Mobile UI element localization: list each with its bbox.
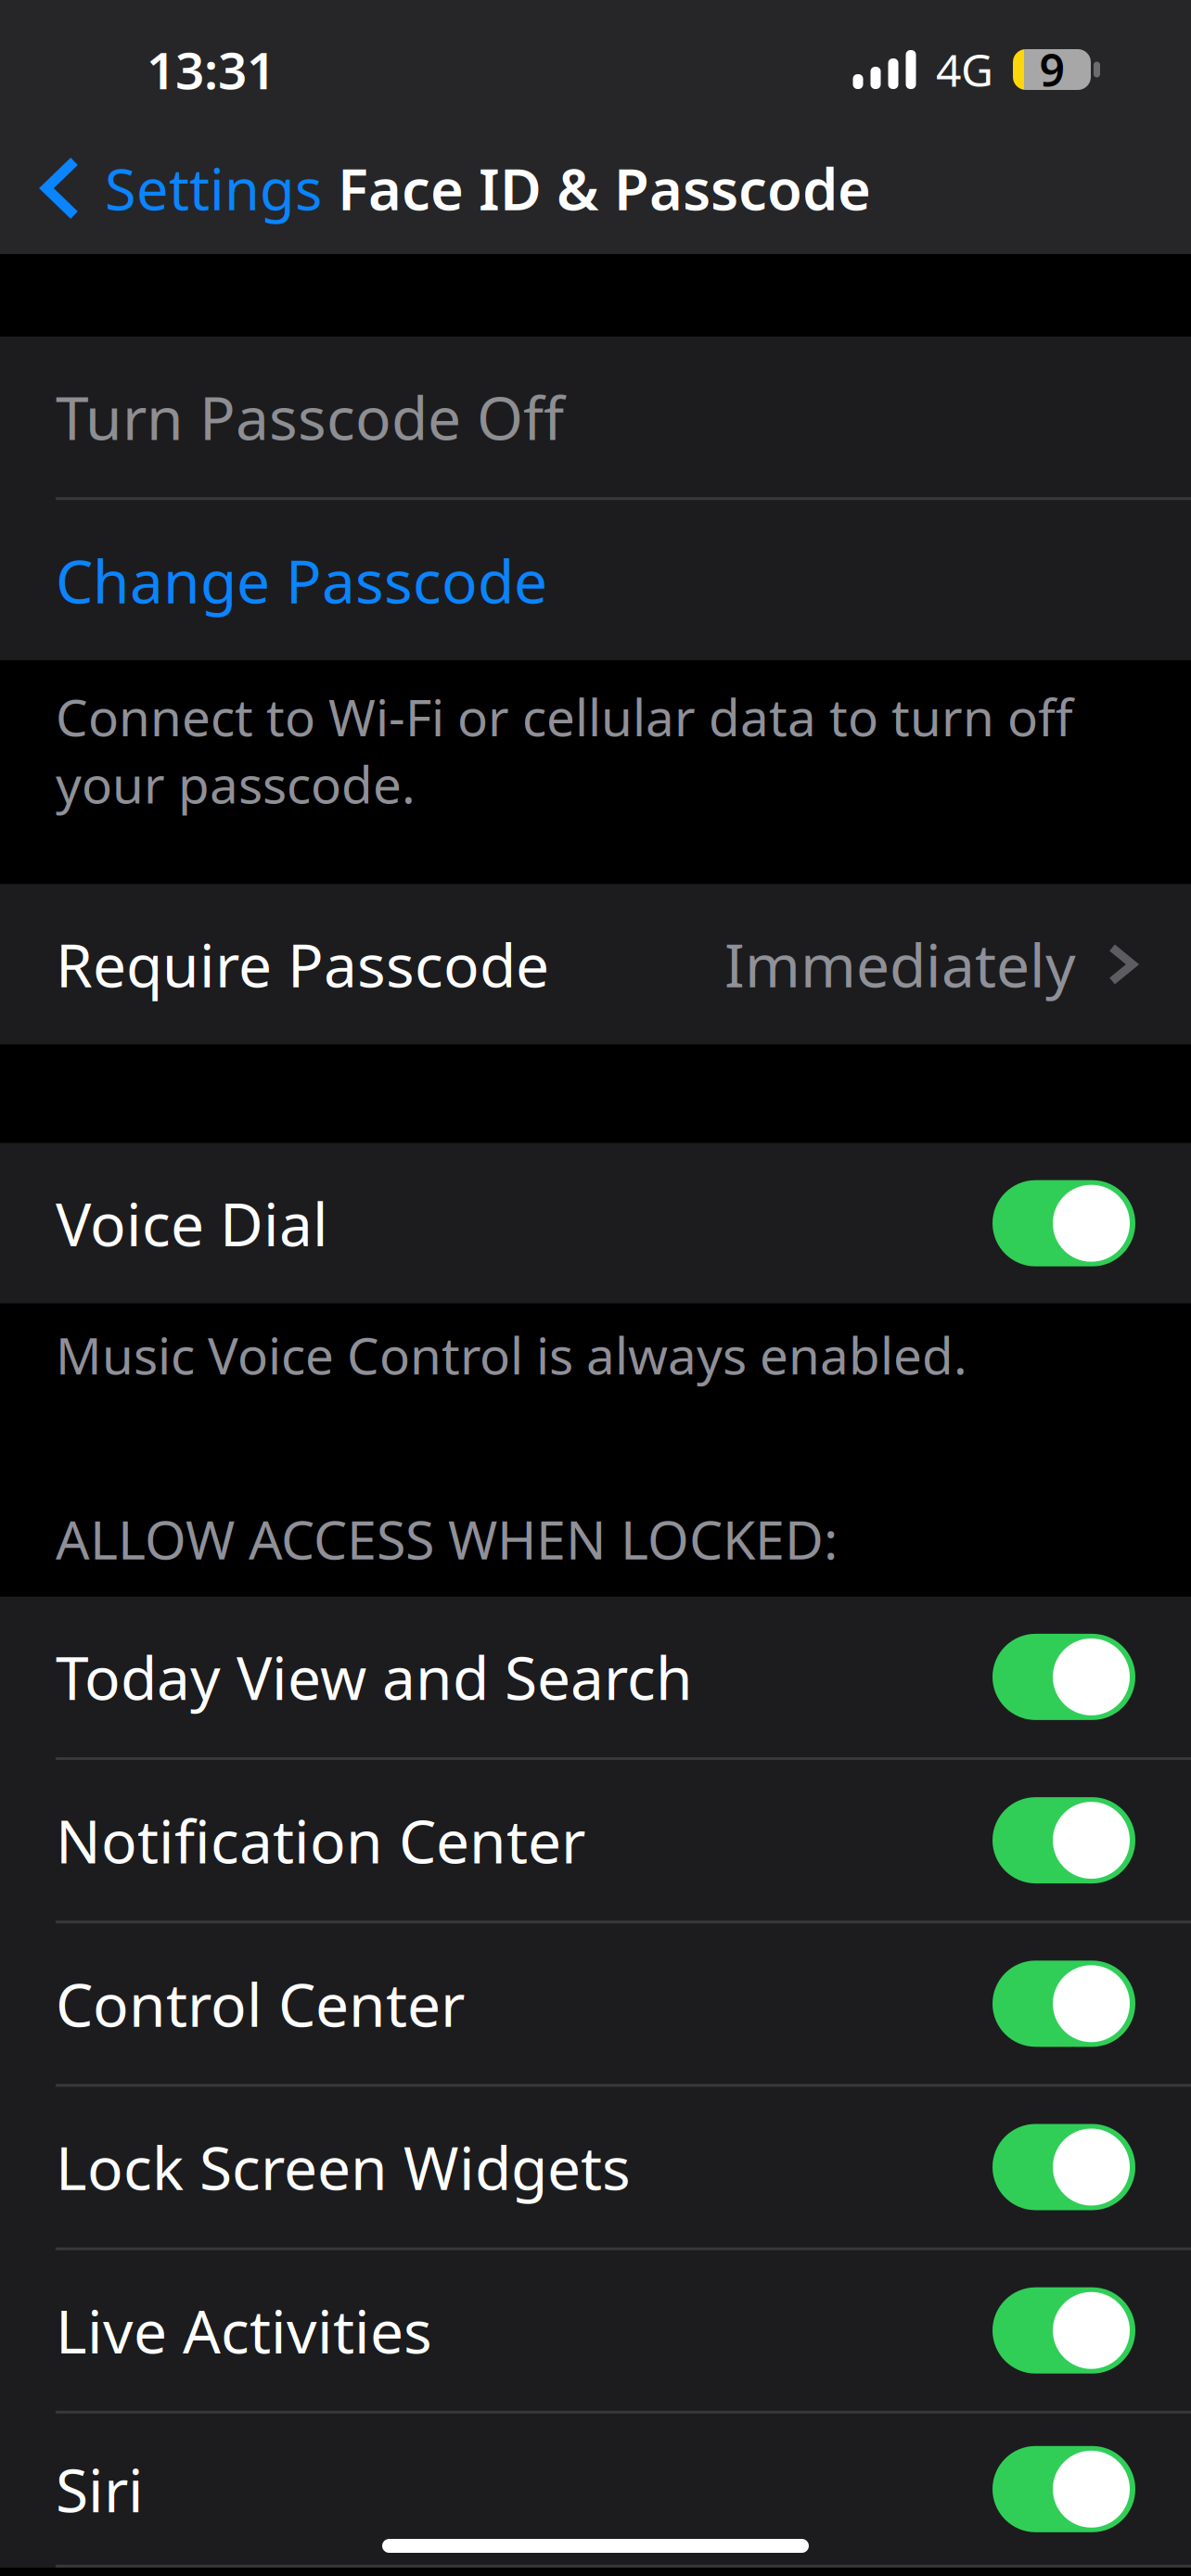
staticText: Notification Center xyxy=(56,1801,585,1880)
staticText: Live Activities xyxy=(56,2291,432,2370)
button[interactable]: Lock Screen Widgets xyxy=(0,2087,1191,2247)
button[interactable]: Settings xyxy=(0,122,338,254)
button[interactable]: Today View and Search xyxy=(0,1597,1191,1757)
staticText: 13:31 xyxy=(147,36,275,103)
staticText: Immediately xyxy=(724,925,1076,1004)
staticText: Turn Passcode Off xyxy=(56,377,564,456)
staticText: Change Passcode xyxy=(56,541,547,620)
staticText: Face ID & Passcode xyxy=(338,150,871,226)
staticText: 4G xyxy=(936,40,993,99)
staticText: Lock Screen Widgets xyxy=(56,2128,631,2206)
staticText: Connect to Wi-Fi or cellular data to tur… xyxy=(56,683,1073,817)
staticText: Control Center xyxy=(56,1964,465,2043)
staticText: Siri xyxy=(56,2450,144,2529)
staticText: Require Passcode xyxy=(56,925,549,1004)
button[interactable]: Turn Passcode Off xyxy=(0,337,1191,497)
button[interactable]: Siri xyxy=(0,2414,1191,2565)
button[interactable]: Voice Dial xyxy=(0,1143,1191,1304)
button[interactable]: Require Passcode xyxy=(0,884,1191,1045)
staticText: 9 xyxy=(1039,40,1064,99)
staticText: Settings xyxy=(105,150,322,226)
button[interactable]: Control Center xyxy=(0,1923,1191,2084)
button[interactable]: Change Passcode xyxy=(0,500,1191,661)
button[interactable]: Live Activities xyxy=(0,2250,1191,2411)
button[interactable]: Notification Center xyxy=(0,1760,1191,1921)
staticText: Voice Dial xyxy=(56,1184,328,1263)
staticText: ALLOW ACCESS WHEN LOCKED: xyxy=(56,1504,838,1574)
staticText: Today View and Search xyxy=(56,1637,693,1716)
staticText: Music Voice Control is always enabled. xyxy=(56,1321,967,1389)
